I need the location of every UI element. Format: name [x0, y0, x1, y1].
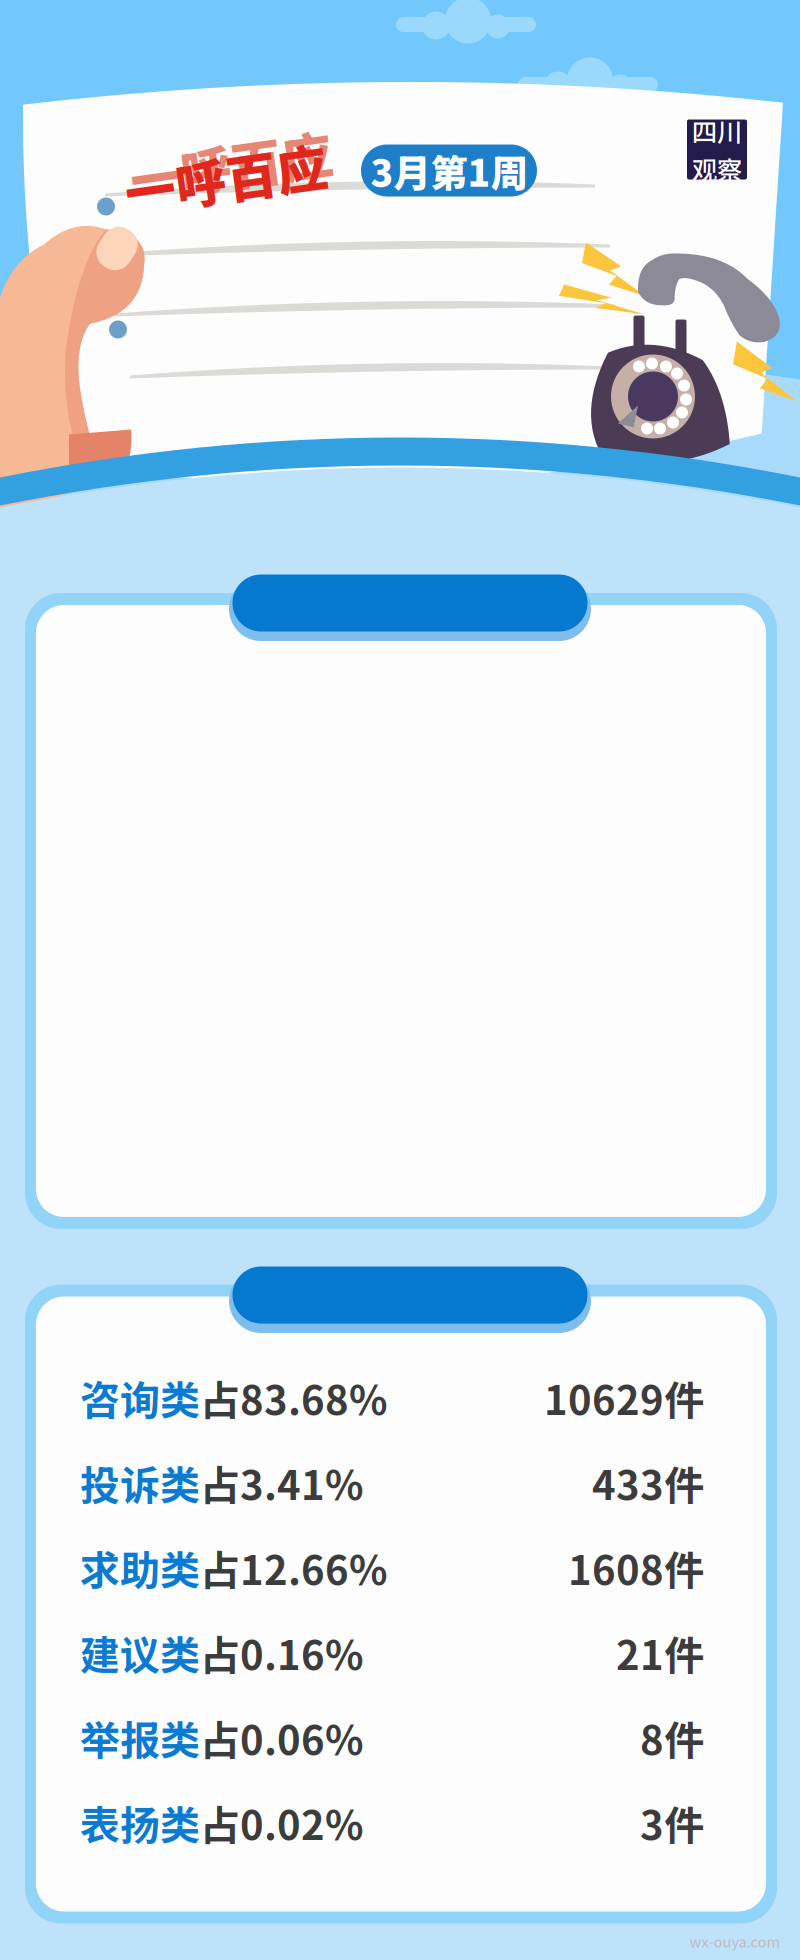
staticText: 占0.16% [200, 1623, 364, 1681]
staticText: 占0.02% [200, 1793, 364, 1851]
staticText: 占3.41% [200, 1453, 364, 1511]
button[interactable] [225, 1257, 595, 1333]
staticText: 21件 [616, 1623, 704, 1681]
staticText: 表扬类 [80, 1793, 200, 1851]
staticText: 一呼百应 [131, 129, 335, 202]
staticText: 433件 [592, 1453, 704, 1511]
staticText: 投诉类 [80, 1453, 200, 1511]
staticText: wx-ouya.com [689, 1930, 780, 1952]
staticText: 1608件 [568, 1538, 704, 1596]
staticText: 一呼百应 [124, 141, 328, 214]
staticText: 举报类 [80, 1708, 200, 1766]
staticText: 建议类 [80, 1623, 200, 1681]
staticText: 3件 [640, 1793, 704, 1851]
staticText: 观察 [692, 150, 742, 187]
staticText: 求助类 [80, 1538, 200, 1596]
staticText: 四川 [692, 112, 742, 149]
staticText: 占0.06% [200, 1708, 364, 1766]
staticText: 咨询类 [80, 1368, 200, 1426]
staticText: 3月第1周 [370, 143, 527, 198]
staticText: 10629件 [544, 1368, 704, 1426]
staticText: 8件 [640, 1708, 704, 1766]
staticText: 占12.66% [200, 1538, 388, 1596]
staticText: 占83.68% [200, 1368, 388, 1426]
button[interactable] [225, 565, 595, 641]
